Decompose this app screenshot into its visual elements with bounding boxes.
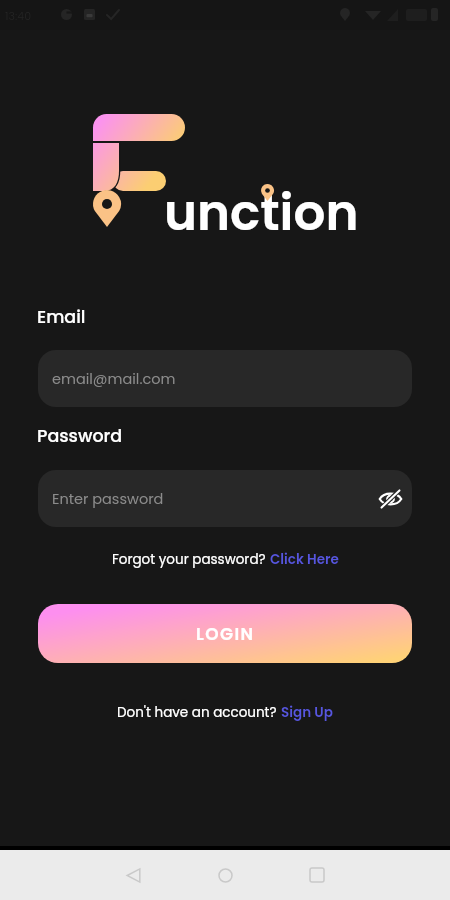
button[interactable]: Enter password: [38, 470, 412, 527]
staticText: 13:40: [5, 8, 32, 23]
button[interactable]: email@mail.com: [38, 350, 412, 407]
staticText: Password: [37, 424, 123, 449]
button[interactable]: Show password: [368, 477, 412, 521]
button[interactable]: Click Here: [270, 550, 339, 569]
staticText: Enter password: [52, 489, 164, 509]
staticText: LOGIN: [196, 622, 255, 646]
button[interactable]: LOGIN: [38, 604, 412, 663]
button[interactable]: Sign Up: [281, 703, 333, 722]
staticText: Forgot your password?: [112, 550, 270, 569]
staticText: Email: [37, 305, 86, 330]
staticText: Sign Up: [281, 703, 333, 722]
staticText: Click Here: [270, 550, 339, 569]
staticText: unction: [164, 178, 359, 248]
staticText: Don't have an account?: [117, 703, 281, 722]
staticText: email@mail.com: [52, 369, 176, 389]
button[interactable]: Back: [87, 850, 179, 900]
button[interactable]: Home: [179, 850, 271, 900]
button[interactable]: Recent apps: [271, 850, 363, 900]
